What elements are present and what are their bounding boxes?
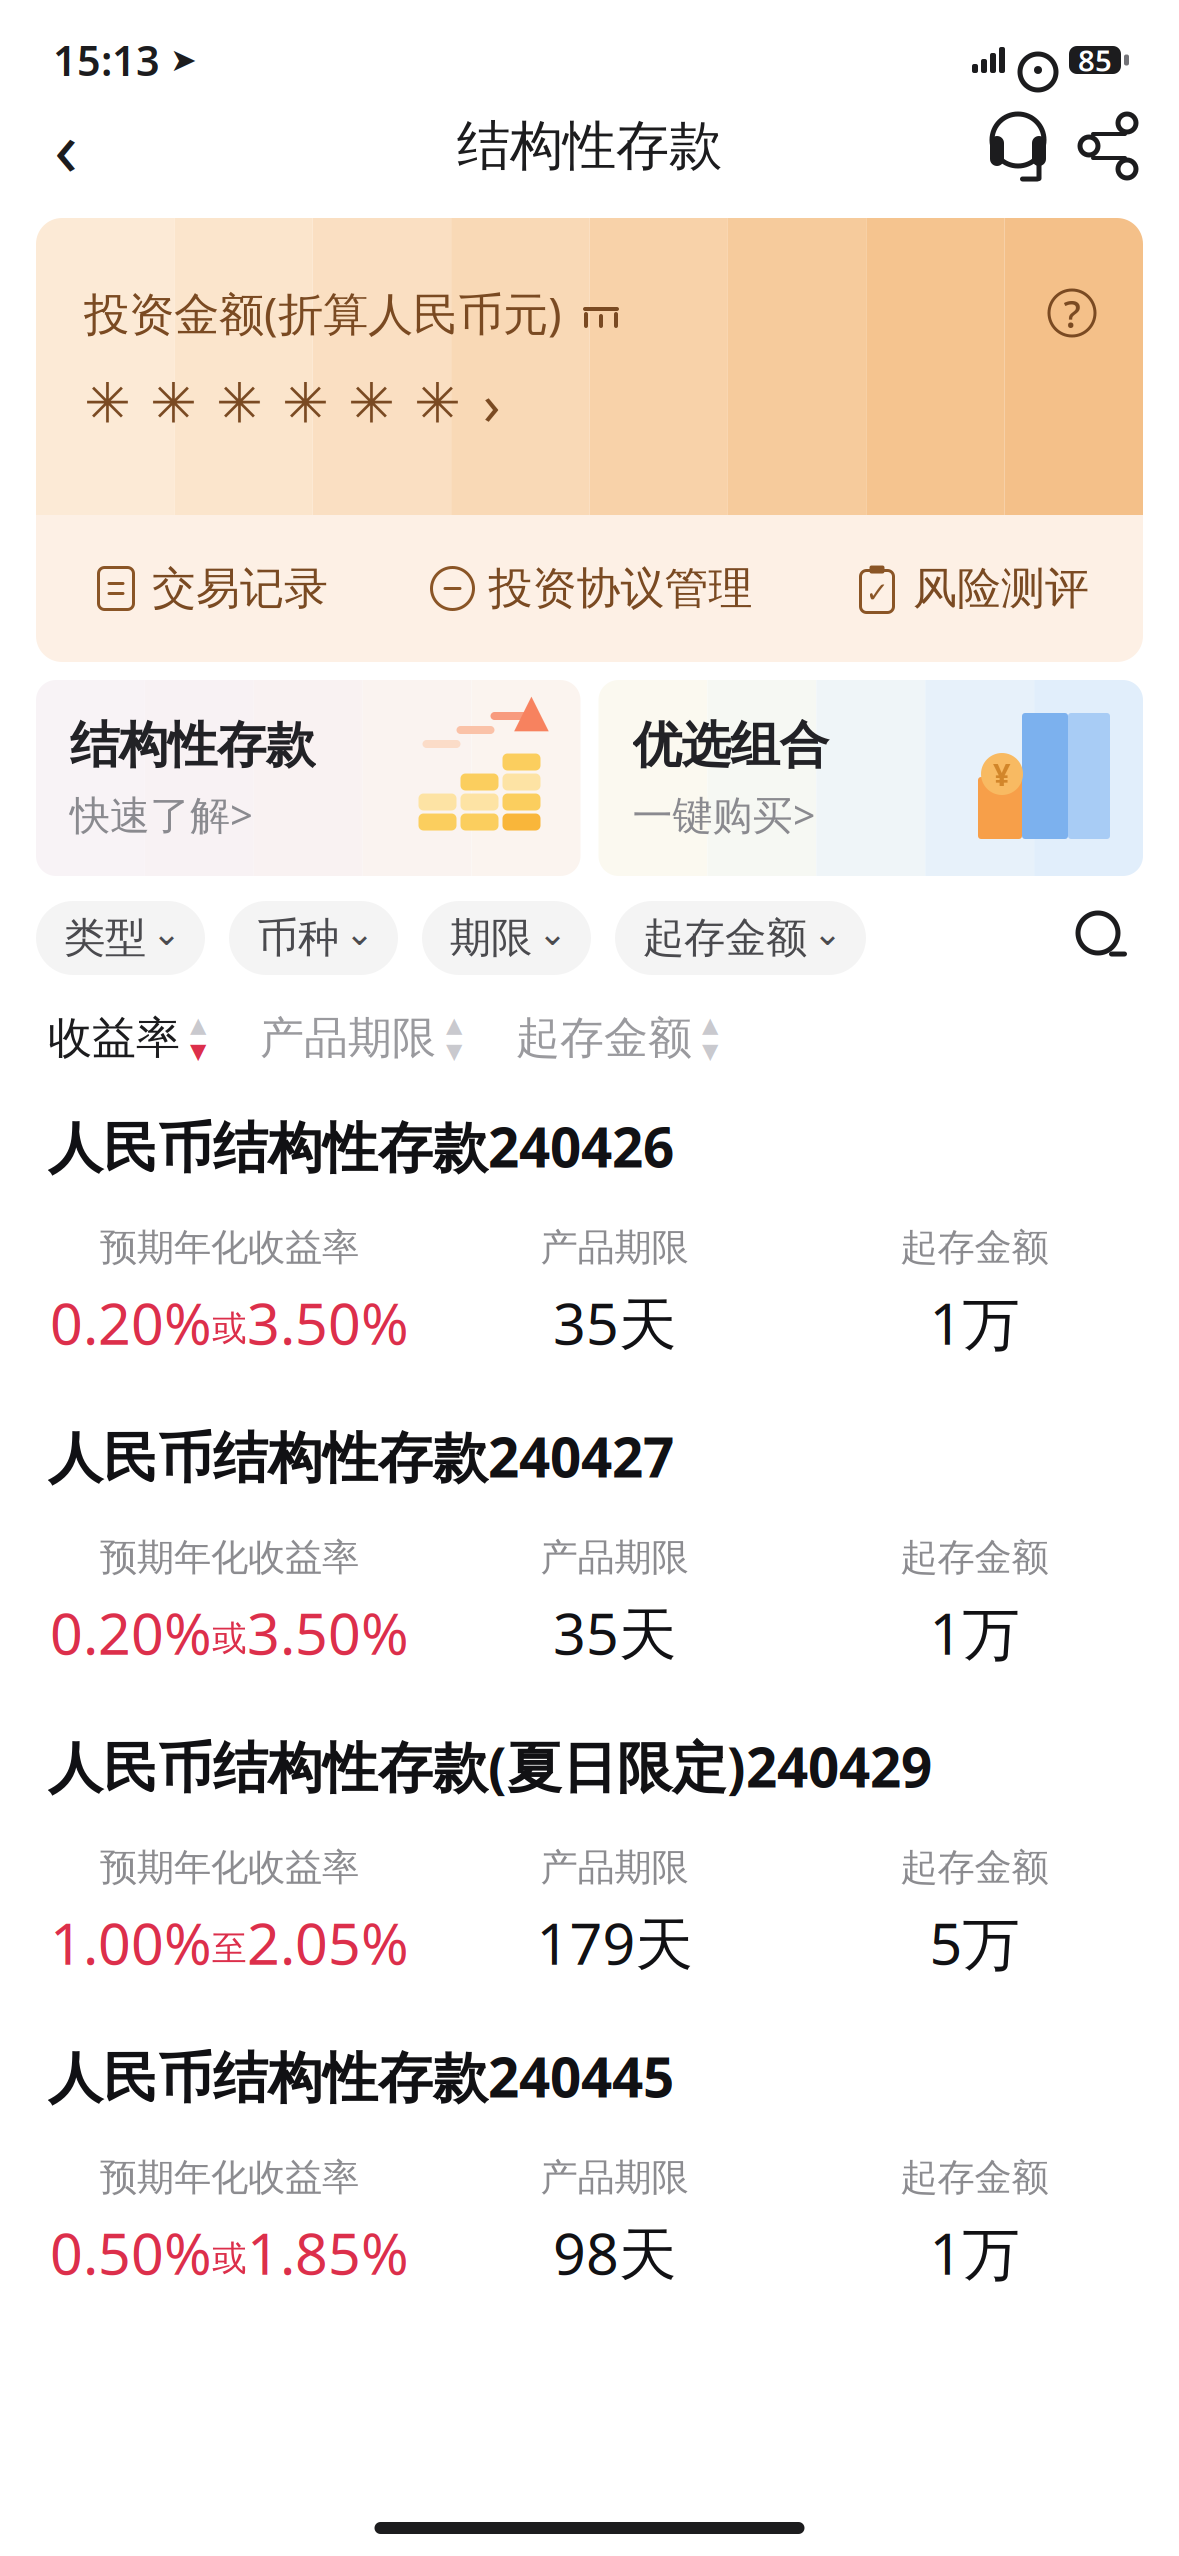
staticText: 1.00% bbox=[50, 1904, 212, 1981]
staticText: 起存金额 bbox=[643, 913, 807, 963]
staticText: 起存金额 bbox=[900, 1225, 1048, 1270]
staticText: 起存金额 bbox=[900, 2155, 1048, 2200]
staticText: ▲ bbox=[446, 1013, 462, 1037]
staticText: 投资金额(折算人民币元) bbox=[84, 283, 562, 343]
button[interactable]: 结构性存款 bbox=[36, 680, 580, 876]
button[interactable]: 人民币结构性存款240426 bbox=[0, 1088, 1179, 1398]
staticText: 投资协议管理 bbox=[488, 561, 752, 615]
staticText: 98天 bbox=[553, 2214, 676, 2291]
staticText: ⌄ bbox=[538, 913, 567, 953]
staticText: 交易记录 bbox=[152, 561, 328, 615]
staticText: ▼ bbox=[446, 1039, 462, 1063]
staticText: 1万 bbox=[929, 1284, 1019, 1361]
staticText: ‹ bbox=[54, 95, 78, 197]
staticText: ? bbox=[1063, 287, 1080, 339]
staticText: 1万 bbox=[929, 1594, 1019, 1671]
button[interactable]: 说明 bbox=[1037, 278, 1107, 348]
staticText: 人民币结构性存款240427 bbox=[48, 1420, 674, 1493]
staticText: 产品期限 bbox=[540, 1845, 688, 1890]
staticText: 0.20% bbox=[50, 1594, 212, 1671]
staticText: ¥ bbox=[993, 754, 1011, 794]
staticText: ▼ bbox=[190, 1039, 206, 1063]
button[interactable]: 投资协议管理 bbox=[430, 541, 752, 635]
staticText: 35天 bbox=[553, 1284, 676, 1361]
button[interactable]: 产品期限 bbox=[260, 995, 462, 1081]
staticText: 85 bbox=[1078, 40, 1112, 79]
button[interactable]: 搜索 bbox=[1059, 895, 1145, 981]
staticText: 人民币结构性存款240426 bbox=[48, 1110, 674, 1183]
staticText: ▼ bbox=[702, 1039, 718, 1063]
staticText: 产品期限 bbox=[540, 1535, 688, 1580]
staticText: ▲ bbox=[702, 1013, 718, 1037]
staticText: 人民币结构性存款(夏日限定)240429 bbox=[48, 1730, 932, 1803]
staticText: 风险测评 bbox=[913, 561, 1089, 615]
staticText: 类型 bbox=[64, 913, 146, 963]
staticText: 1.85% bbox=[247, 2214, 409, 2291]
button[interactable]: 起存金额 bbox=[615, 901, 866, 975]
staticText: 优选组合 bbox=[632, 715, 828, 776]
button[interactable]: 起存金额 bbox=[516, 995, 718, 1081]
staticText: 3.50% bbox=[247, 1594, 409, 1671]
staticText: 35天 bbox=[553, 1594, 676, 1671]
staticText: 起存金额 bbox=[900, 1845, 1048, 1890]
staticText: 快速了解> bbox=[70, 788, 253, 841]
staticText: 0.20% bbox=[50, 1284, 212, 1361]
button[interactable]: 人民币结构性存款(夏日限定)240429 bbox=[0, 1708, 1179, 2018]
staticText: 一键购买> bbox=[632, 788, 815, 841]
button[interactable]: 分享 bbox=[1063, 101, 1153, 191]
button[interactable]: 类型 bbox=[36, 901, 205, 975]
button[interactable]: 交易记录 bbox=[94, 541, 328, 635]
button[interactable]: 人民币结构性存款240445 bbox=[0, 2018, 1179, 2328]
staticText: 或 bbox=[212, 1307, 247, 1350]
staticText: 或 bbox=[212, 2237, 247, 2280]
button[interactable]: ✳ ✳ ✳ ✳ ✳ ✳ bbox=[84, 348, 1107, 440]
button[interactable]: 币种 bbox=[229, 901, 398, 975]
staticText: 至 bbox=[212, 1927, 247, 1970]
staticText: 结构性存款 bbox=[457, 113, 722, 179]
button[interactable]: 人民币结构性存款240427 bbox=[0, 1398, 1179, 1708]
staticText: 预期年化收益率 bbox=[100, 1535, 359, 1580]
staticText: 产品期限 bbox=[260, 1011, 436, 1065]
staticText: 1万 bbox=[929, 2214, 1019, 2291]
staticText: ⌄ bbox=[152, 913, 181, 953]
staticText: 产品期限 bbox=[540, 2155, 688, 2200]
staticText: 起存金额 bbox=[900, 1535, 1048, 1580]
button[interactable]: 在线客服 bbox=[973, 101, 1063, 191]
staticText: 3.50% bbox=[247, 1284, 409, 1361]
staticText: 0.50% bbox=[50, 2214, 212, 2291]
staticText: 起存金额 bbox=[516, 1011, 692, 1065]
staticText: 5万 bbox=[929, 1904, 1019, 1981]
staticText: ⌄ bbox=[345, 913, 374, 953]
staticText: 179天 bbox=[536, 1904, 692, 1981]
button[interactable]: 收益率 bbox=[48, 995, 206, 1081]
staticText: 预期年化收益率 bbox=[100, 1845, 359, 1890]
staticText: 收益率 bbox=[48, 1011, 180, 1065]
button[interactable]: ✓ bbox=[855, 541, 1089, 635]
staticText: 产品期限 bbox=[540, 1225, 688, 1270]
staticText: ▲ bbox=[514, 684, 549, 736]
staticText: 或 bbox=[212, 1617, 247, 1660]
button[interactable]: 返回 bbox=[20, 100, 112, 192]
staticText: 预期年化收益率 bbox=[100, 1225, 359, 1270]
staticText: 期限 bbox=[450, 913, 532, 963]
staticText: 结构性存款 bbox=[70, 715, 315, 776]
staticText: 15:13 bbox=[53, 33, 160, 87]
staticText: 预期年化收益率 bbox=[100, 2155, 359, 2200]
staticText: ▲ bbox=[190, 1013, 206, 1037]
button[interactable]: 期限 bbox=[422, 901, 591, 975]
staticText: ➤ bbox=[170, 42, 197, 78]
staticText: 人民币结构性存款240445 bbox=[48, 2040, 674, 2113]
staticText: 2.05% bbox=[247, 1904, 409, 1981]
button[interactable]: 优选组合 bbox=[598, 680, 1143, 876]
staticText: 币种 bbox=[257, 913, 339, 963]
staticText: ✳ ✳ ✳ ✳ ✳ ✳ bbox=[84, 371, 461, 435]
staticText: › bbox=[483, 366, 500, 440]
staticText: ✓ bbox=[865, 577, 888, 608]
staticText: ⌄ bbox=[813, 913, 842, 953]
